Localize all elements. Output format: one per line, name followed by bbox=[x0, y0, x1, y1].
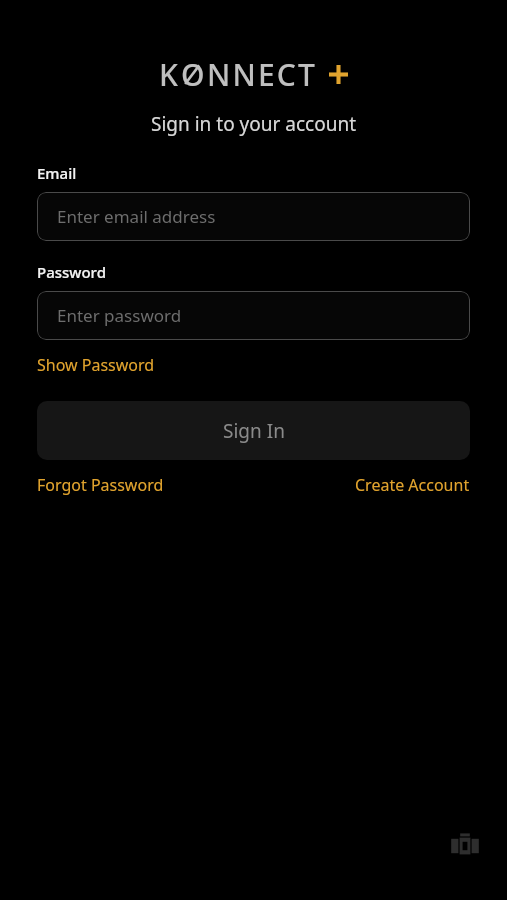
staticText: Sign in to your account bbox=[37, 111, 470, 137]
staticText: Forgot Password bbox=[37, 474, 164, 496]
staticText: NNECT bbox=[207, 54, 318, 95]
button[interactable]: Forgot Password bbox=[37, 474, 164, 496]
button[interactable]: Sign In bbox=[37, 401, 470, 460]
button[interactable]: Create Account bbox=[355, 474, 470, 496]
staticText: Show Password bbox=[37, 354, 155, 376]
staticText: O bbox=[181, 54, 207, 95]
staticText: Email bbox=[37, 163, 77, 183]
button[interactable]: Show Password bbox=[37, 354, 155, 376]
staticText: Enter password bbox=[57, 304, 182, 327]
button[interactable]: Developer options bbox=[445, 826, 485, 866]
staticText: Create Account bbox=[355, 474, 470, 496]
staticText: K bbox=[159, 54, 181, 95]
staticText: Enter email address bbox=[57, 205, 216, 228]
button[interactable]: Enter password bbox=[37, 291, 470, 340]
staticText: Password bbox=[37, 262, 106, 282]
staticText: Sign In bbox=[223, 418, 285, 444]
button[interactable]: Enter email address bbox=[37, 192, 470, 241]
